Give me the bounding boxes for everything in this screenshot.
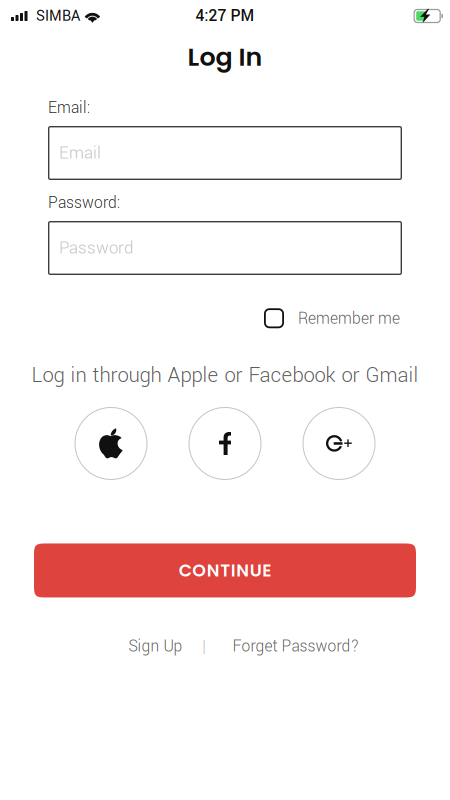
staticText: Log in through Apple or Facebook or Gmai… xyxy=(31,361,418,390)
button[interactable]: Sign in with Facebook xyxy=(189,407,261,479)
staticText: Password: xyxy=(48,192,120,214)
staticText: Password xyxy=(59,236,133,260)
staticText: Remember me xyxy=(298,307,400,330)
staticText: Log In xyxy=(187,39,262,75)
staticText: Email xyxy=(59,141,101,165)
staticText: Forget Password? xyxy=(232,635,359,658)
staticText: | xyxy=(201,634,206,659)
staticText: Email: xyxy=(48,97,90,119)
button[interactable]: Sign in with Google xyxy=(303,407,375,479)
staticText: 4:27 PM xyxy=(195,5,254,27)
staticText: SIMBA xyxy=(36,6,80,26)
button[interactable]: Sign in with Apple xyxy=(75,407,147,479)
staticText: CONTINUE xyxy=(179,558,271,583)
button[interactable]: Forget Password? xyxy=(232,635,359,658)
staticText: Sign Up xyxy=(128,635,182,658)
button[interactable]: Sign Up xyxy=(128,635,182,658)
button[interactable]: CONTINUE xyxy=(34,543,416,597)
button[interactable]: Remember me xyxy=(264,307,400,329)
